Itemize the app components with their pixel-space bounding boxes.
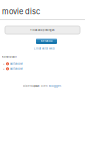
staticText: Lihat versi web — [34, 47, 55, 50]
staticText: aditya dwi — [10, 67, 23, 70]
staticText: Diberdayakan oleh — [23, 84, 49, 87]
staticText: Beranda — [41, 39, 52, 43]
button[interactable]: • — [0, 61, 85, 66]
staticText: Tidak ada postingan. — [30, 28, 55, 31]
staticText: Kontributor — [2, 55, 17, 58]
staticText: • — [3, 62, 5, 65]
button[interactable]: • — [0, 66, 85, 71]
staticText: Blogger — [49, 84, 61, 87]
button[interactable]: Beranda — [36, 38, 57, 44]
staticText: • — [3, 67, 5, 70]
staticText: aditya dwi — [10, 62, 23, 65]
staticText: . — [61, 84, 62, 87]
button[interactable]: Blogger — [49, 84, 61, 87]
button[interactable]: Lihat versi web — [34, 47, 55, 50]
staticText: movie disc — [2, 7, 40, 16]
